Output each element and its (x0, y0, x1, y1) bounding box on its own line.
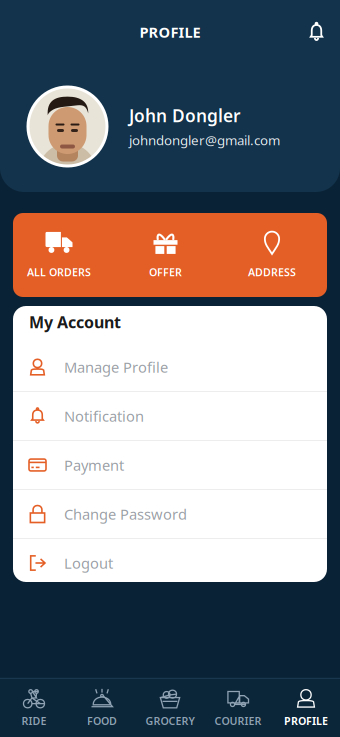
staticText: Notification (64, 406, 144, 426)
button[interactable]: Manage Profile (13, 343, 327, 392)
staticText: COURIER (214, 714, 261, 728)
staticText: PROFILE (284, 714, 328, 728)
staticText: OFFER (149, 265, 182, 279)
button[interactable]: COURIER (204, 689, 272, 728)
staticText: ADDRESS (248, 265, 296, 279)
staticText: FOOD (87, 714, 117, 728)
button[interactable]: OFFER (119, 231, 211, 279)
button[interactable]: Payment (13, 441, 327, 490)
button[interactable]: Change Password (13, 490, 327, 539)
staticText: johndongler@gmail.com (129, 131, 280, 149)
button[interactable]: Notifications (302, 16, 331, 48)
staticText: Logout (64, 553, 113, 573)
button[interactable]: GROCERY (136, 689, 204, 728)
staticText: Payment (64, 455, 124, 475)
staticText: ALL ORDERS (27, 265, 91, 279)
staticText: Manage Profile (64, 357, 168, 377)
button[interactable]: RIDE (0, 689, 68, 728)
staticText: My Account (29, 311, 121, 333)
button[interactable]: PROFILE (272, 689, 340, 728)
staticText: John Dongler (129, 104, 241, 127)
button[interactable]: ADDRESS (226, 231, 318, 279)
staticText: RIDE (21, 714, 46, 728)
staticText: Change Password (64, 504, 187, 524)
button[interactable]: Notification (13, 392, 327, 441)
button[interactable]: FOOD (68, 689, 136, 728)
button[interactable]: Logout (13, 539, 327, 587)
staticText: GROCERY (145, 714, 194, 728)
button[interactable]: ALL ORDERS (13, 231, 105, 279)
staticText: PROFILE (139, 22, 200, 42)
